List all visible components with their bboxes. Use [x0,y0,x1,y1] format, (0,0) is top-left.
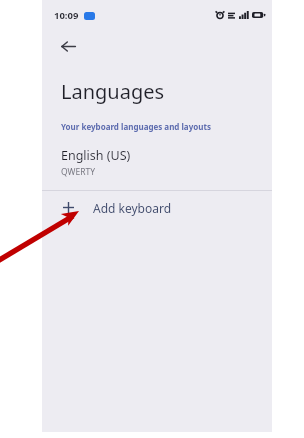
staticText: 10:09 [54,9,79,22]
button[interactable]: English (US) [42,146,272,184]
staticText: Languages [61,78,165,105]
staticText: Your keyboard languages and layouts [61,121,211,132]
button[interactable]: Add keyboard [42,191,272,224]
staticText: QWERTY [61,166,96,178]
staticText: Add keyboard [93,200,172,216]
button[interactable]: Back [52,30,84,62]
staticText: English (US) [61,147,131,164]
